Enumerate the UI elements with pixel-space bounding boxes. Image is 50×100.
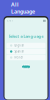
staticText: French — [14, 56, 23, 59]
staticText: Continue — [22, 63, 30, 70]
button[interactable]: French — [6, 55, 45, 60]
staticText: 9:41 — [6, 19, 13, 22]
staticText: ▮▮▮ — [42, 19, 45, 22]
staticText: Select a Language — [8, 33, 43, 39]
staticText: Spanish — [14, 50, 24, 53]
button[interactable]: Continue — [22, 65, 30, 68]
staticText: All Language — [11, 1, 35, 15]
button[interactable]: Spanish — [6, 49, 45, 54]
button[interactable]: English — [6, 43, 45, 48]
staticText: English — [14, 44, 24, 47]
